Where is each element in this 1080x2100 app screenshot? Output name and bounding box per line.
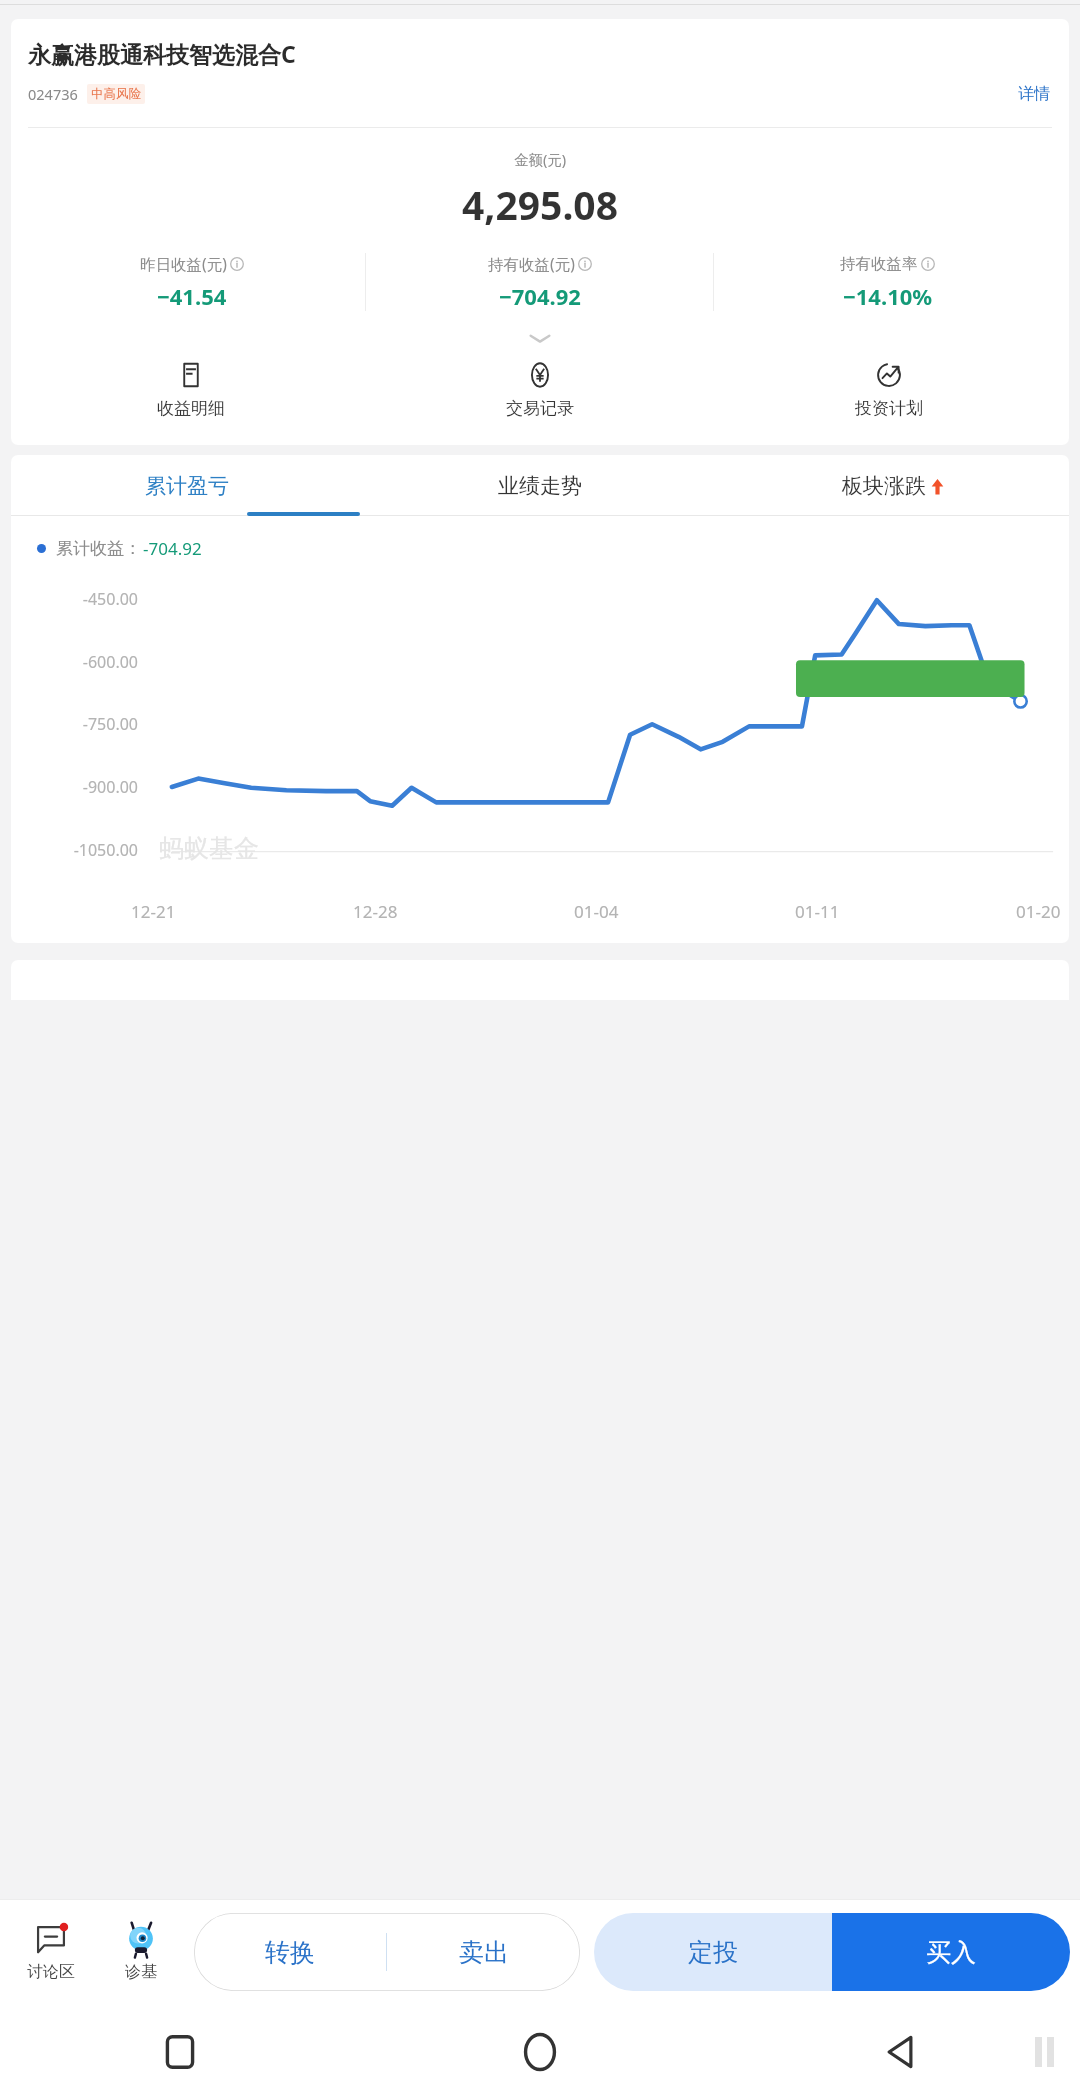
staticText: 业绩走势 <box>498 473 582 499</box>
staticText: 12-28 <box>353 900 398 923</box>
button[interactable]: 讨论区 <box>10 1923 92 1982</box>
staticText: 交易记录 <box>506 398 574 419</box>
button[interactable]: 持有收益(元) <box>366 251 713 313</box>
staticText: -750.00 <box>11 713 138 735</box>
button[interactable]: 转换 <box>194 1913 580 1991</box>
staticText: 12-21 <box>131 900 176 923</box>
button[interactable]: Back <box>720 2004 1080 2100</box>
staticText: 金额(元) <box>11 149 1069 169</box>
staticText: 01-11 <box>795 900 840 923</box>
button[interactable]: 定投 <box>594 1913 832 1991</box>
button[interactable]: 买入 <box>832 1913 1070 1991</box>
staticText: −41.54 <box>157 281 227 311</box>
staticText: 持有收益率 <box>840 254 918 274</box>
staticText: -900.00 <box>11 776 138 798</box>
button[interactable]: 累计盈亏 <box>11 455 363 516</box>
button[interactable]: 昨日收益(元) <box>19 251 365 313</box>
staticText: 中高风险 <box>91 86 141 102</box>
staticText: 详情 <box>1018 84 1050 104</box>
button[interactable]: 转换 <box>194 1937 386 1968</box>
staticText: -704.92 <box>143 537 202 560</box>
button[interactable]: 投资计划 <box>714 358 1063 423</box>
staticText: 4,295.08 <box>11 178 1069 231</box>
staticText: 转换 <box>265 1937 315 1968</box>
staticText: 01-04 <box>574 900 619 923</box>
staticText: 持有收益(元) <box>488 253 575 274</box>
staticText: -600.00 <box>11 651 138 673</box>
staticText: 024736 <box>28 84 78 104</box>
staticText: 累计盈亏 <box>145 473 229 499</box>
button[interactable]: 诊基 <box>100 1922 182 1982</box>
staticText: 01-20 <box>1016 900 1061 923</box>
staticText: 定投 <box>688 1937 738 1968</box>
staticText: 诊基 <box>125 1962 157 1982</box>
staticText: 投资计划 <box>855 398 923 419</box>
staticText: 收益明细 <box>157 398 225 419</box>
button[interactable]: 交易记录 <box>365 358 714 423</box>
staticText: 板块涨跌 <box>842 473 926 499</box>
staticText: -450.00 <box>11 588 138 610</box>
button[interactable]: 卖出 <box>387 1937 580 1968</box>
button[interactable]: 详情 <box>1016 80 1052 108</box>
staticText: -1050.00 <box>11 839 138 861</box>
button[interactable]: Home <box>360 2004 720 2100</box>
staticText: 昨日收益(元) <box>140 253 227 274</box>
button[interactable]: 收益明细 <box>17 358 365 423</box>
button[interactable]: 持有收益率 <box>714 252 1061 313</box>
button[interactable]: 板块涨跌 <box>716 455 1069 516</box>
button[interactable]: Recents <box>0 2004 360 2100</box>
staticText: 买入 <box>926 1937 976 1968</box>
staticText: −704.92 <box>499 281 581 311</box>
staticText: −14.10% <box>843 281 933 311</box>
staticText: 累计收益： <box>56 538 141 559</box>
staticText: 讨论区 <box>27 1962 75 1982</box>
staticText: 蚂蚁基金 <box>159 833 259 864</box>
button[interactable]: 业绩走势 <box>363 455 716 516</box>
staticText: 永赢港股通科技智选混合C <box>28 38 296 69</box>
staticText: 卖出 <box>459 1937 509 1968</box>
